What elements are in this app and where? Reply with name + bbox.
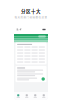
- staticText: 分区十大: [21, 8, 41, 14]
- button[interactable]: Me: [39, 92, 48, 100]
- button[interactable]: Channels: [22, 92, 31, 100]
- staticText: 9:41: [16, 28, 22, 31]
- staticText: 每天的热门视频都在这里: [14, 15, 47, 19]
- button[interactable]: Discover: [31, 92, 39, 100]
- button[interactable]: Home: [14, 92, 22, 100]
